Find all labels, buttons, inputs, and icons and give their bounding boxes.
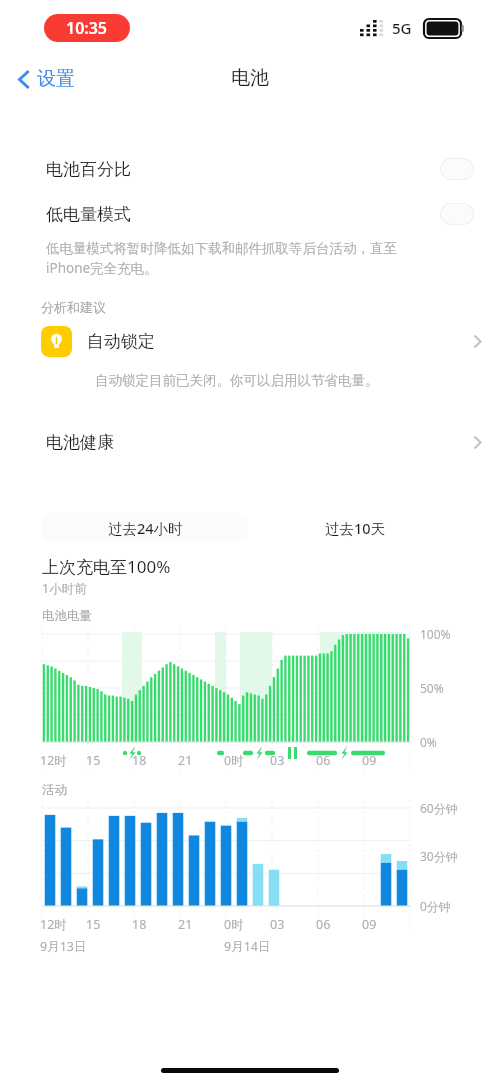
staticText: 低电量模式将暂时降低如下载和邮件抓取等后台活动，直至 iPhone完全充电。: [46, 240, 397, 277]
staticText: 0时: [224, 916, 244, 933]
staticText: 过去10天: [325, 518, 386, 538]
button[interactable]: 电池健康: [0, 428, 500, 457]
staticText: 5G: [392, 18, 412, 38]
staticText: 1小时前: [42, 580, 87, 597]
staticText: 设置: [37, 67, 75, 91]
staticText: 12时: [40, 916, 67, 933]
staticText: 09: [362, 752, 377, 769]
staticText: 自动锁定: [87, 331, 155, 352]
staticText: 09: [362, 916, 377, 933]
other: 展开: [473, 334, 482, 349]
staticText: 18: [132, 752, 147, 769]
staticText: 9月13日: [40, 938, 87, 955]
staticText: 21: [178, 916, 193, 933]
staticText: 自动锁定目前已关闭。你可以启用以节省电量。: [95, 372, 379, 389]
staticText: 电池健康: [46, 432, 114, 453]
staticText: 10:35: [66, 17, 108, 39]
button[interactable]: 设置: [12, 63, 81, 95]
staticText: 21: [178, 752, 193, 769]
staticText: 15: [86, 752, 101, 769]
staticText: 15: [86, 916, 101, 933]
staticText: 9月14日: [224, 938, 271, 955]
staticText: 电池百分比: [46, 159, 131, 180]
staticText: 0分钟: [420, 898, 451, 914]
staticText: 低电量模式: [46, 204, 131, 225]
staticText: 18: [132, 916, 147, 933]
staticText: 12时: [40, 752, 67, 769]
other: 展开: [473, 435, 482, 450]
staticText: 分析和建议: [41, 299, 106, 315]
staticText: 60分钟: [420, 800, 458, 816]
staticText: 100%: [420, 626, 451, 642]
staticText: 活动: [42, 782, 67, 798]
staticText: 50%: [420, 680, 444, 696]
staticText: 上次充电至100%: [42, 555, 171, 578]
staticText: 06: [316, 752, 331, 769]
button[interactable]: 自动锁定: [0, 324, 500, 359]
staticText: 03: [270, 752, 285, 769]
button[interactable]: 过去24小时: [42, 513, 248, 542]
staticText: 0%: [420, 734, 437, 750]
button[interactable]: 电池百分比: [0, 152, 500, 186]
staticText: 06: [316, 916, 331, 933]
staticText: 电池电量: [42, 608, 92, 624]
button[interactable]: 低电量模式: [0, 197, 500, 231]
staticText: 0时: [224, 752, 244, 769]
staticText: 过去24小时: [108, 518, 183, 538]
staticText: 03: [270, 916, 285, 933]
button[interactable]: 过去10天: [252, 513, 458, 542]
staticText: 电池: [0, 66, 500, 90]
staticText: 30分钟: [420, 848, 458, 864]
